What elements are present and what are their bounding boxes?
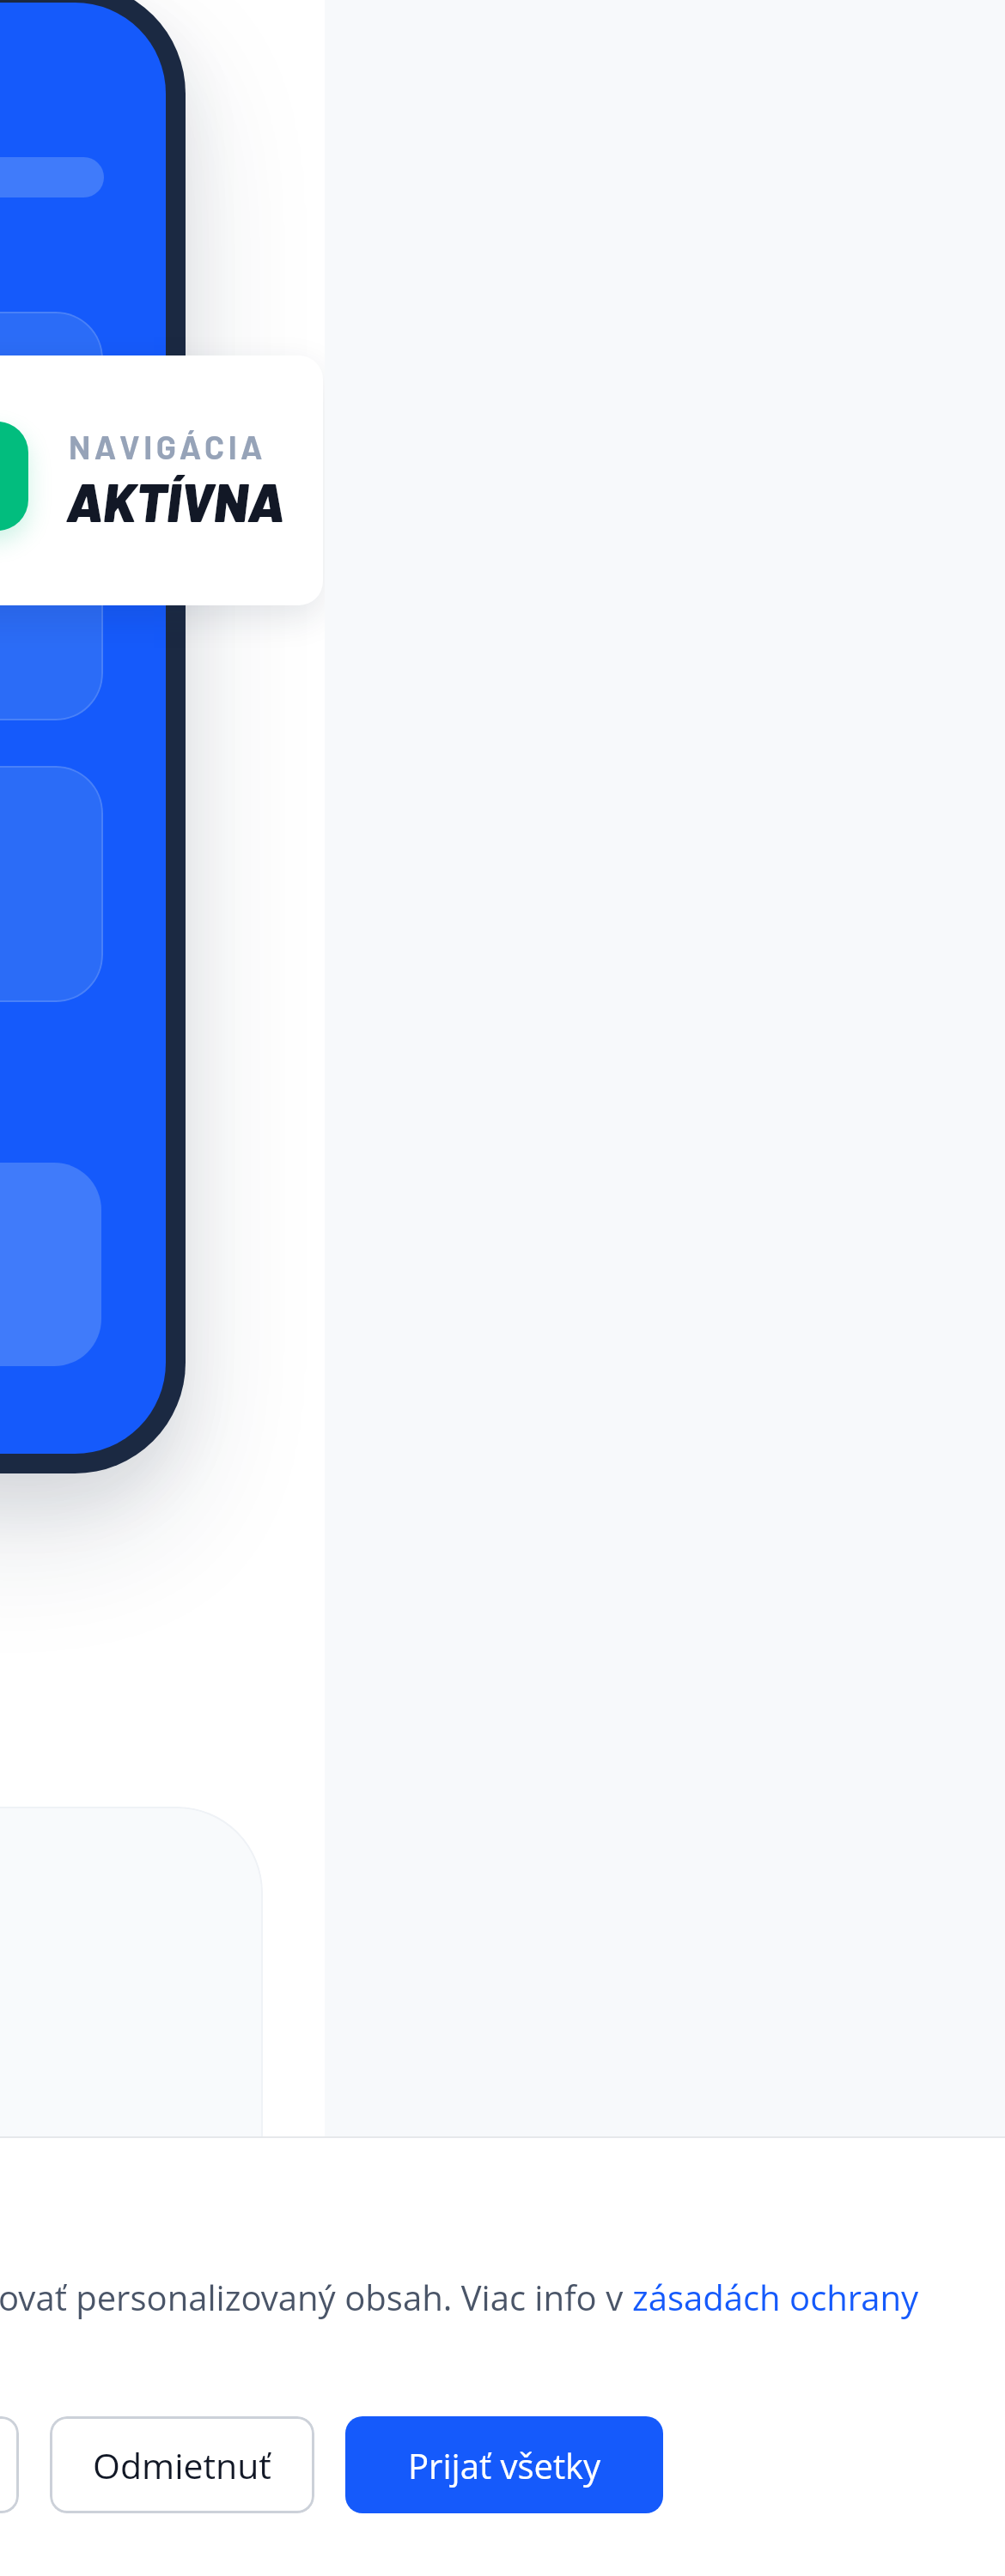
button[interactable]: Odmietnuť — [50, 2416, 314, 2513]
staticText: Odmietnuť — [93, 2441, 271, 2489]
staticText: AKTÍVNA — [66, 469, 285, 532]
button[interactable]: zásadách ochrany — [632, 2274, 919, 2320]
staticText: ovať personalizovaný obsah. Viac info v — [0, 2274, 632, 2320]
button[interactable]: Nastavenia — [0, 2416, 19, 2513]
staticText: Prijať všetky — [408, 2442, 601, 2488]
staticText: NAVIGÁCIA — [69, 427, 267, 466]
staticText: zásadách ochrany — [632, 2274, 919, 2320]
button[interactable]: Prijať všetky — [345, 2416, 663, 2513]
